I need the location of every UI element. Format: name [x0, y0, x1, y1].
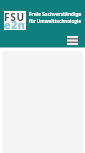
staticText: für Umwelttechnologie [29, 18, 82, 24]
staticText: e2n [4, 17, 26, 32]
button[interactable]: FSU e2n home [4, 11, 26, 30]
staticText: FSU [4, 10, 26, 24]
staticText: Freie Sachverständige [29, 11, 82, 17]
button[interactable]: Menu [67, 36, 78, 45]
